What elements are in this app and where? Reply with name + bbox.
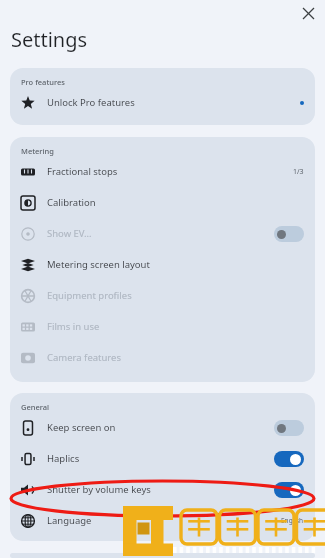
staticText: Show EV… bbox=[47, 227, 92, 240]
staticText: Pro features bbox=[21, 77, 65, 87]
staticText: Shutter by volume keys bbox=[47, 483, 151, 496]
staticText: Unlock Pro features bbox=[47, 96, 135, 109]
staticText: General bbox=[21, 402, 50, 412]
staticText: Language bbox=[47, 514, 92, 527]
button[interactable]: Calibration bbox=[10, 187, 315, 218]
staticText: Metering screen layout bbox=[47, 258, 150, 271]
staticText: Settings bbox=[11, 26, 88, 53]
staticText: Calibration bbox=[47, 196, 96, 209]
staticText: English bbox=[281, 516, 304, 525]
button[interactable]: Metering screen layout bbox=[10, 249, 315, 280]
button[interactable]: Camera features bbox=[10, 342, 315, 373]
button[interactable]: Haplics bbox=[10, 443, 315, 474]
button[interactable]: Films in use bbox=[10, 311, 315, 342]
staticText: Camera features bbox=[47, 351, 122, 364]
staticText: Fractional stops bbox=[47, 165, 118, 178]
button[interactable]: Keep screen on bbox=[10, 412, 315, 443]
button[interactable]: Show EV… bbox=[10, 218, 315, 249]
staticText: 1/3 bbox=[293, 167, 304, 177]
button[interactable]: Unlock Pro features bbox=[10, 87, 315, 118]
button[interactable]: Toggle on bbox=[274, 451, 304, 467]
staticText: Equipment profiles bbox=[47, 289, 132, 302]
button[interactable]: Equipment profiles bbox=[10, 280, 315, 311]
staticText: Haplics bbox=[47, 452, 80, 465]
staticText: Films in use bbox=[47, 320, 100, 333]
button[interactable]: Close bbox=[296, 1, 320, 25]
button[interactable]: Toggle on bbox=[274, 482, 304, 498]
button[interactable]: Fractional stops bbox=[10, 156, 315, 187]
button[interactable]: Language bbox=[10, 505, 315, 536]
staticText: Keep screen on bbox=[47, 421, 116, 434]
button[interactable]: Toggle off bbox=[274, 226, 304, 242]
button[interactable]: Toggle off bbox=[274, 420, 304, 436]
button[interactable]: Shutter by volume keys bbox=[10, 474, 315, 505]
staticText: Metering bbox=[21, 146, 54, 156]
